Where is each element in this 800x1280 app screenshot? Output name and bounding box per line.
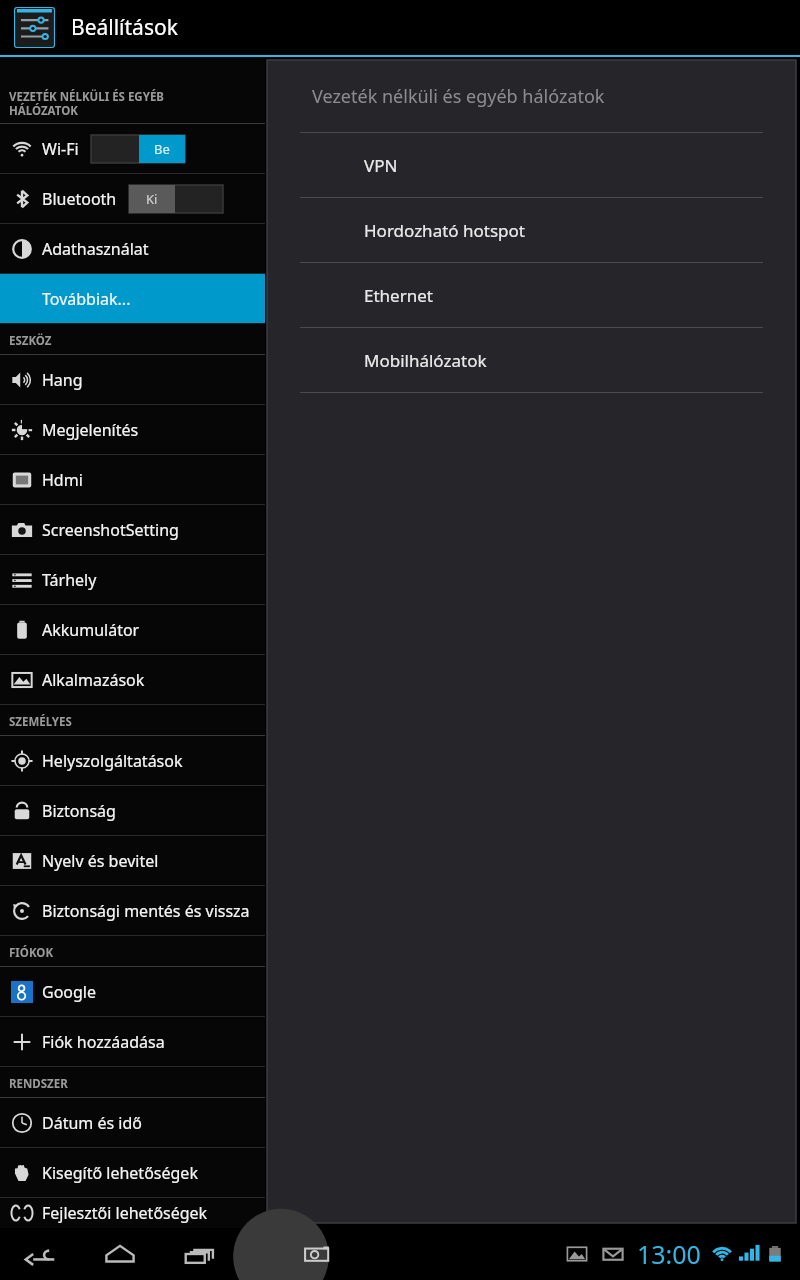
button[interactable]: ScreenshotSetting (0, 505, 265, 554)
button[interactable]: Nyelv és bevitel (0, 836, 265, 885)
button[interactable]: Screenshot (278, 1228, 358, 1280)
button[interactable]: Be (91, 135, 185, 163)
button[interactable]: Megjelenítés (0, 405, 265, 454)
button[interactable]: Ki (129, 185, 223, 213)
staticText: Alkalmazások (42, 669, 145, 691)
button[interactable]: Akkumulátor (0, 605, 265, 654)
button[interactable]: Google (0, 967, 265, 1016)
staticText: Biztonság (42, 800, 116, 822)
button[interactable]: Home (80, 1228, 160, 1280)
button[interactable]: Továbbiak... (0, 274, 265, 323)
button[interactable]: Hang (0, 355, 265, 404)
staticText: Ki (146, 190, 158, 208)
staticText: VEZETÉK NÉLKÜLI ÉS EGYÉB HÁLÓZATOK (9, 89, 164, 118)
button[interactable]: Fiók hozzáadása (0, 1017, 265, 1066)
button[interactable]: Back (0, 1228, 80, 1280)
staticText: Tárhely (42, 569, 97, 591)
staticText: Dátum és idő (42, 1112, 142, 1134)
button[interactable]: Tárhely (0, 555, 265, 604)
staticText: Kisegítő lehetőségek (42, 1162, 198, 1184)
button[interactable]: Mobilhálózatok (267, 328, 796, 392)
staticText: Fejlesztői lehetőségek (42, 1202, 208, 1224)
staticText: Be (154, 140, 170, 158)
staticText: Hang (42, 369, 83, 391)
staticText: Megjelenítés (42, 419, 139, 441)
button[interactable]: Helyszolgáltatások (0, 736, 265, 785)
staticText: Hordozható hotspot (364, 219, 525, 242)
staticText: ESZKÖZ (9, 333, 52, 349)
staticText: Adathasználat (42, 238, 149, 260)
staticText: ScreenshotSetting (42, 519, 179, 541)
button[interactable]: Wi-Fi (0, 124, 265, 173)
staticText: Wi-Fi (42, 138, 79, 160)
button[interactable]: Kisegítő lehetőségek (0, 1148, 265, 1197)
staticText: Beállítások (71, 13, 178, 42)
button[interactable]: Ethernet (267, 263, 796, 327)
staticText: Hdmi (42, 469, 83, 491)
staticText: 13:00 (637, 1237, 701, 1271)
button[interactable]: VPN (267, 133, 796, 197)
staticText: FIÓKOK (9, 945, 54, 961)
staticText: VPN (364, 154, 398, 177)
button[interactable]: Adathasználat (0, 224, 265, 273)
button[interactable]: Alkalmazások (0, 655, 265, 704)
staticText: Google (42, 981, 97, 1003)
button[interactable]: Recents (160, 1228, 240, 1280)
staticText: Mobilhálózatok (364, 349, 487, 372)
staticText: Nyelv és bevitel (42, 850, 159, 872)
button[interactable]: Hdmi (0, 455, 265, 504)
staticText: Fiók hozzáadása (42, 1031, 165, 1053)
staticText: Vezeték nélküli és egyéb hálózatok (312, 84, 605, 109)
staticText: Akkumulátor (42, 619, 140, 641)
staticText: Továbbiak... (42, 288, 131, 310)
staticText: Helyszolgáltatások (42, 750, 183, 772)
staticText: Bluetooth (42, 188, 117, 210)
button[interactable]: Bluetooth (0, 174, 265, 223)
button[interactable]: Hordozható hotspot (267, 198, 796, 262)
button[interactable]: Biztonsági mentés és vissza (0, 886, 265, 935)
button[interactable]: Biztonság (0, 786, 265, 835)
button[interactable]: Fejlesztői lehetőségek (0, 1198, 265, 1228)
staticText: RENDSZER (9, 1076, 68, 1092)
staticText: SZEMÉLYES (9, 714, 72, 730)
staticText: Biztonsági mentés és vissza (42, 900, 250, 922)
staticText: Ethernet (364, 284, 433, 307)
button[interactable]: Dátum és idő (0, 1098, 265, 1147)
